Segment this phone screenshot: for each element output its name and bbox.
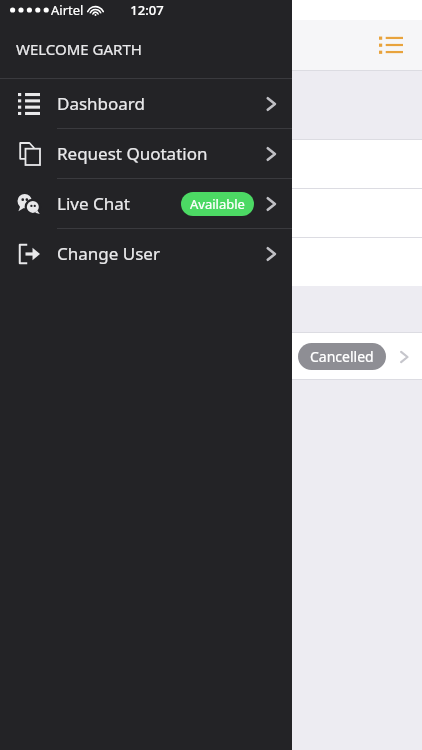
button[interactable]: Code: Promo20 <box>0 238 422 286</box>
staticText: Code: XMAS16 <box>162 204 257 223</box>
staticText: WELCOME GARTH <box>16 39 142 59</box>
button[interactable]: Request Quotation <box>0 129 292 178</box>
staticText: Dashboard <box>57 92 146 115</box>
button[interactable]: Dashboard <box>0 79 292 128</box>
button[interactable]: Use Code: APP30 <box>0 140 422 188</box>
button[interactable]: Live Chat <box>0 179 292 228</box>
staticText: Use Code: APP30 <box>162 155 274 174</box>
staticText: Available <box>190 195 245 213</box>
staticText: Cancelled <box>310 347 374 366</box>
button[interactable]: Code: XMAS16 <box>0 189 422 237</box>
button[interactable]: Menu <box>374 28 408 62</box>
button[interactable]: Change User <box>0 229 292 278</box>
staticText: Request Quotation <box>57 142 208 165</box>
staticText: 12:07 <box>130 1 164 19</box>
staticText: Live Chat <box>57 192 130 215</box>
staticText: Airtel <box>51 1 84 19</box>
staticText: Change User <box>57 242 160 265</box>
button[interactable]: Cancelled <box>0 333 422 379</box>
